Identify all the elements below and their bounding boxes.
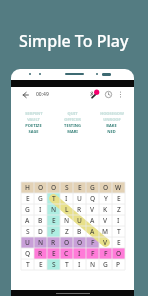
- staticText: A: [90, 216, 95, 225]
- staticText: H: [25, 183, 30, 192]
- staticText: A: [90, 227, 95, 236]
- staticText: T: [65, 260, 69, 269]
- staticText: I: [39, 205, 42, 214]
- staticText: N: [90, 260, 96, 269]
- staticText: OFFICER: [64, 117, 81, 122]
- staticText: D: [38, 227, 43, 236]
- staticText: O: [64, 238, 70, 247]
- staticText: E: [52, 249, 56, 258]
- staticText: O: [77, 238, 83, 247]
- button[interactable]: Help: [103, 89, 114, 100]
- button[interactable]: More options: [116, 90, 125, 99]
- staticText: F: [104, 249, 108, 258]
- staticText: T: [52, 194, 56, 203]
- staticText: O: [38, 183, 44, 192]
- staticText: R: [77, 205, 82, 214]
- staticText: N: [64, 216, 70, 225]
- staticText: E: [117, 238, 121, 247]
- staticText: TESTING: [64, 123, 81, 128]
- staticText: A: [25, 216, 30, 225]
- staticText: R: [38, 249, 43, 258]
- staticText: F: [91, 249, 95, 258]
- staticText: U: [25, 238, 30, 247]
- staticText: O: [51, 183, 57, 192]
- staticText: C: [64, 249, 69, 258]
- staticText: NED: [107, 129, 116, 134]
- staticText: L: [65, 205, 69, 214]
- staticText: E: [26, 194, 30, 203]
- staticText: I: [78, 249, 81, 258]
- staticText: U: [77, 216, 82, 225]
- staticText: B: [77, 227, 82, 236]
- staticText: W: [115, 183, 122, 192]
- staticText: S: [65, 183, 69, 192]
- staticText: G: [25, 205, 30, 214]
- staticText: I: [117, 216, 120, 225]
- staticText: G: [90, 183, 95, 192]
- staticText: T: [26, 260, 30, 269]
- staticText: MARI: [67, 129, 78, 134]
- staticText: UNROOF: [103, 117, 121, 122]
- staticText: SERPENT: [25, 111, 43, 116]
- staticText: P: [51, 227, 56, 236]
- staticText: O: [103, 183, 109, 192]
- staticText: E: [39, 260, 43, 269]
- staticText: O: [116, 249, 122, 258]
- staticText: I: [65, 194, 68, 203]
- staticText: Q: [90, 194, 96, 203]
- staticText: Z: [65, 227, 69, 236]
- staticText: Y: [104, 194, 108, 203]
- staticText: E: [117, 194, 121, 203]
- staticText: E: [78, 183, 82, 192]
- staticText: N: [51, 205, 57, 214]
- staticText: HOOSEGOW: [100, 111, 124, 116]
- staticText: Z: [117, 205, 121, 214]
- staticText: G: [103, 260, 108, 269]
- staticText: S: [26, 227, 30, 236]
- staticText: E: [52, 216, 56, 225]
- staticText: V: [90, 205, 95, 214]
- staticText: M: [102, 227, 109, 236]
- staticText: QUIT: [67, 111, 78, 116]
- staticText: P: [116, 260, 121, 269]
- button[interactable]: Hint: [89, 89, 100, 100]
- staticText: SAGE: [28, 129, 39, 134]
- staticText: Simple To Play: [19, 30, 129, 52]
- staticText: N: [38, 238, 44, 247]
- staticText: U: [77, 194, 82, 203]
- staticText: V: [103, 216, 108, 225]
- staticText: BAKE: [106, 123, 117, 128]
- staticText: 00:49: [36, 91, 49, 98]
- button[interactable]: Back: [20, 90, 30, 100]
- staticText: Q: [25, 249, 31, 258]
- staticText: R: [51, 238, 56, 247]
- staticText: F: [91, 238, 95, 247]
- staticText: V: [103, 238, 108, 247]
- staticText: VAULT: [27, 117, 40, 122]
- staticText: B: [38, 216, 43, 225]
- staticText: G: [38, 194, 43, 203]
- staticText: T: [117, 227, 121, 236]
- staticText: S: [52, 260, 56, 269]
- staticText: POETIZE: [25, 123, 42, 128]
- staticText: I: [78, 260, 81, 269]
- staticText: K: [103, 205, 108, 214]
